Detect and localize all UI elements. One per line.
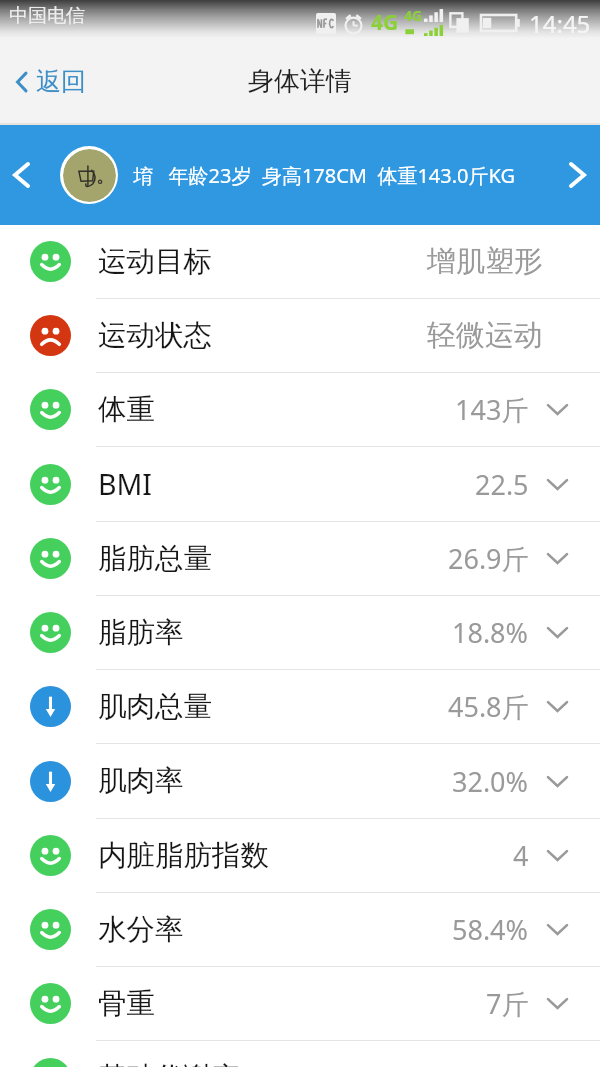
staticText: 4G xyxy=(404,6,423,25)
staticText: 18.8% xyxy=(452,614,529,651)
button[interactable]: 骨重 xyxy=(0,967,600,1041)
button[interactable]: 脂肪率 xyxy=(0,596,600,670)
staticText: 肌肉总量 xyxy=(98,689,212,725)
staticText: 26.9斤 xyxy=(448,540,529,577)
button[interactable]: 基础代谢率 xyxy=(0,1041,600,1067)
staticText: 内脏脂肪指数 xyxy=(98,838,269,874)
staticText: 22.5 xyxy=(475,466,529,503)
staticText: 4 xyxy=(513,837,529,874)
staticText: 水分率 xyxy=(98,912,184,948)
staticText: 增肌塑形 xyxy=(427,243,543,280)
staticText: 肌肉率 xyxy=(98,763,184,799)
staticText: BMI xyxy=(98,465,153,504)
button[interactable]: 肌肉率 xyxy=(0,744,600,819)
staticText: 14:45 xyxy=(529,7,591,37)
staticText: 4G xyxy=(371,8,399,37)
staticText: 58.4% xyxy=(452,911,529,948)
staticText: 45.8斤 xyxy=(448,688,529,725)
button[interactable]: BMI xyxy=(0,447,600,522)
staticText: 身体详情 xyxy=(248,65,352,98)
button[interactable]: 返回 xyxy=(0,58,100,105)
staticText: 骨重 xyxy=(98,986,155,1022)
staticText: 143斤 xyxy=(455,391,529,428)
button[interactable]: 运动目标 xyxy=(0,225,600,299)
staticText: 基础代谢率 xyxy=(98,1060,241,1067)
staticText: 脂肪总量 xyxy=(98,541,212,577)
staticText: 堉 年龄23岁 身高178CM 体重143.0斤KG xyxy=(133,162,516,189)
staticText: 返回 xyxy=(36,66,86,97)
staticText: 体重 xyxy=(98,392,155,428)
button[interactable]: 脂肪总量 xyxy=(0,522,600,596)
button[interactable]: 体重 xyxy=(0,373,600,447)
staticText: 轻微运动 xyxy=(427,317,543,354)
staticText: 脂肪率 xyxy=(98,615,184,651)
button[interactable]: 运动状态 xyxy=(0,299,600,373)
staticText: 中国电信 xyxy=(9,4,85,28)
staticText: 7斤 xyxy=(486,985,529,1022)
staticText: 运动状态 xyxy=(98,318,212,354)
button[interactable]: 水分率 xyxy=(0,893,600,967)
button[interactable]: 肌肉总量 xyxy=(0,670,600,744)
button[interactable]: Avatar xyxy=(60,146,118,204)
button[interactable]: 内脏脂肪指数 xyxy=(0,819,600,893)
staticText: 32.0% xyxy=(452,763,529,800)
button[interactable]: Next xyxy=(555,125,600,225)
button[interactable]: Previous xyxy=(0,125,42,225)
staticText: 运动目标 xyxy=(98,244,212,280)
